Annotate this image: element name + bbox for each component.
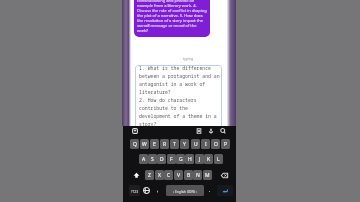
staticText: K — [207, 156, 211, 163]
button[interactable]: ‹ English (IDN) › — [166, 185, 204, 196]
staticText: J — [199, 156, 201, 163]
staticText: ‹ English (IDN) › — [173, 189, 197, 193]
button[interactable]: 1. What is the difference between a prot… — [135, 65, 222, 130]
staticText: Explain the concept of foreshadowing and… — [137, 0, 207, 33]
button[interactable]: M — [203, 170, 212, 180]
button[interactable]: U — [191, 139, 200, 149]
button[interactable]: D — [157, 154, 166, 164]
staticText: ?123 — [131, 189, 139, 193]
button[interactable]: ?123 — [129, 185, 140, 196]
button[interactable]: K — [204, 154, 213, 164]
button[interactable]: Stickers — [132, 128, 138, 134]
staticText: Y — [183, 141, 186, 148]
staticText: V — [177, 172, 181, 179]
button[interactable]: E — [150, 139, 159, 149]
button[interactable]: Explain the concept of foreshadowing and… — [134, 0, 210, 37]
button[interactable]: B — [184, 170, 193, 180]
staticText: F — [170, 156, 173, 163]
button[interactable]: H — [185, 154, 194, 164]
button[interactable]: Shift — [131, 170, 142, 181]
button[interactable]: S — [148, 154, 157, 164]
staticText: , — [157, 187, 159, 194]
button[interactable]: Q — [130, 139, 139, 149]
button[interactable]: I — [201, 139, 210, 149]
button[interactable]: T — [170, 139, 179, 149]
button[interactable]: . — [205, 185, 214, 196]
staticText: I — [205, 141, 207, 148]
staticText: S — [151, 156, 154, 163]
staticText: U — [194, 141, 198, 148]
button[interactable]: A — [139, 154, 148, 164]
button[interactable]: Search — [220, 128, 226, 134]
staticText: 1. What is the difference between a prot… — [139, 65, 220, 127]
staticText: E — [153, 141, 156, 148]
button[interactable]: Z — [145, 170, 154, 180]
staticText: W — [142, 141, 147, 148]
staticText: C — [167, 172, 171, 179]
staticText: X — [158, 172, 161, 179]
button[interactable]: Change language — [142, 185, 151, 196]
button[interactable]: N — [193, 170, 202, 180]
staticText: H — [188, 156, 192, 163]
staticText: P — [224, 141, 228, 148]
staticText: B — [187, 172, 191, 179]
button[interactable]: P — [221, 139, 230, 149]
staticText: L — [217, 156, 220, 163]
button[interactable]: Backspace — [219, 170, 230, 181]
button[interactable]: J — [195, 154, 204, 164]
staticText: . — [209, 187, 211, 194]
staticText: N — [196, 172, 200, 179]
button[interactable]: L — [214, 154, 223, 164]
staticText: D — [160, 156, 164, 163]
button[interactable]: Clipboard — [196, 128, 202, 134]
button[interactable]: O — [211, 139, 220, 149]
button[interactable]: X — [155, 170, 164, 180]
staticText: typing — [183, 56, 194, 61]
button[interactable]: W — [140, 139, 149, 149]
staticText: O — [214, 141, 218, 148]
staticText: T — [173, 141, 176, 148]
button[interactable]: Y — [180, 139, 189, 149]
staticText: R — [163, 141, 167, 148]
button[interactable]: R — [160, 139, 169, 149]
staticText: M — [205, 172, 210, 179]
button[interactable]: F — [167, 154, 176, 164]
button[interactable]: , — [153, 185, 163, 196]
staticText: G — [179, 156, 183, 163]
button[interactable]: C — [164, 170, 173, 180]
staticText: Z — [148, 172, 151, 179]
button[interactable]: V — [174, 170, 183, 180]
button[interactable]: Enter — [217, 185, 233, 196]
staticText: Q — [133, 141, 137, 148]
staticText: A — [142, 156, 146, 163]
button[interactable]: G — [176, 154, 185, 164]
button[interactable]: Voice input — [208, 128, 214, 134]
